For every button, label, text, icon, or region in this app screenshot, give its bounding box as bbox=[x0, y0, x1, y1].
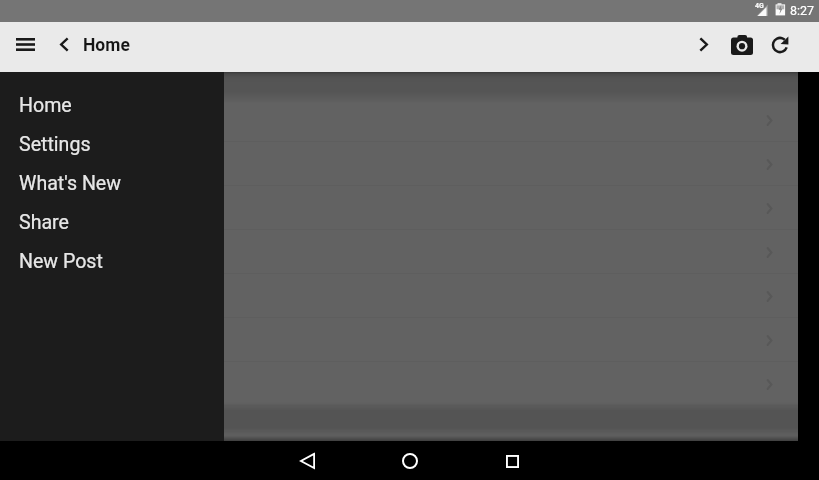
staticText: Settings bbox=[19, 133, 91, 156]
button[interactable]: Settings bbox=[0, 125, 224, 164]
button[interactable]: Refresh bbox=[764, 29, 796, 61]
button[interactable]: Camera bbox=[726, 29, 758, 61]
button[interactable] bbox=[0, 186, 798, 230]
staticText: New Post bbox=[19, 250, 103, 273]
button[interactable]: Forward bbox=[690, 28, 718, 60]
button[interactable]: Back bbox=[294, 448, 320, 474]
button[interactable] bbox=[0, 230, 798, 274]
button[interactable]: What's New bbox=[0, 164, 224, 203]
button[interactable]: Home bbox=[0, 86, 224, 125]
button[interactable] bbox=[0, 142, 798, 186]
button[interactable] bbox=[0, 274, 798, 318]
button[interactable] bbox=[0, 318, 798, 362]
staticText: 4G bbox=[755, 2, 764, 10]
button[interactable]: Back bbox=[50, 28, 78, 60]
staticText: 8:27 bbox=[790, 3, 815, 18]
staticText: Share bbox=[19, 211, 69, 234]
button[interactable]: Open navigation drawer bbox=[8, 30, 43, 58]
button[interactable]: Recent apps bbox=[499, 448, 525, 474]
button[interactable]: New Post bbox=[0, 242, 224, 281]
staticText: Home bbox=[19, 94, 72, 117]
button[interactable] bbox=[0, 362, 798, 406]
staticText: What's New bbox=[19, 172, 121, 195]
button[interactable]: Share bbox=[0, 203, 224, 242]
staticText: Home bbox=[83, 35, 130, 56]
button[interactable] bbox=[0, 98, 798, 142]
button[interactable]: Home bbox=[397, 448, 423, 474]
